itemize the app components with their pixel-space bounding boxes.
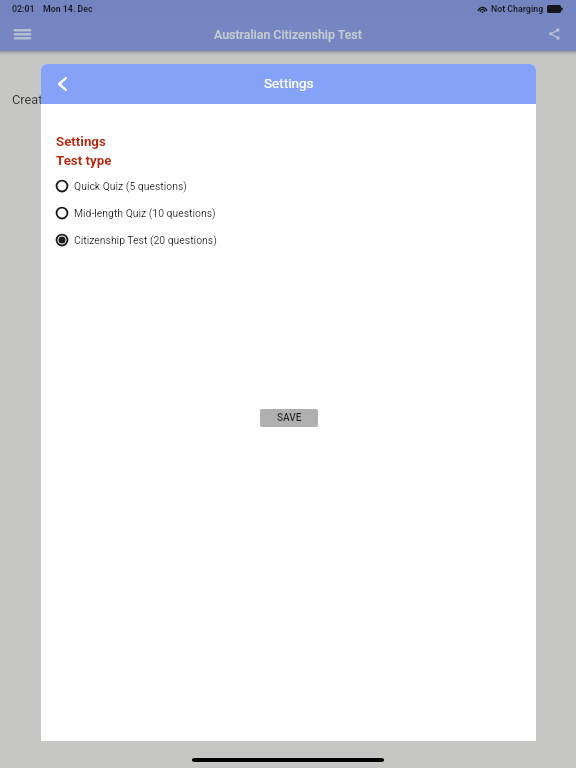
staticText: 02:01	[12, 4, 35, 14]
staticText: SAVE	[277, 412, 302, 424]
staticText: Test type	[56, 153, 112, 169]
button[interactable]: Citizenship Test (20 questions)	[41, 226, 536, 253]
staticText: Mon 14. Dec	[43, 4, 93, 14]
button[interactable]: SAVE	[260, 409, 318, 427]
staticText: Create	[12, 92, 50, 107]
button[interactable]: Share	[533, 17, 576, 51]
button[interactable]: Back	[41, 64, 83, 104]
button[interactable]: Menu	[0, 17, 44, 51]
staticText: Australian Citizenship Test	[214, 27, 362, 42]
staticText: Quick Quiz (5 questions)	[74, 180, 187, 192]
staticText: Not Charging	[491, 4, 544, 14]
staticText: Settings	[264, 75, 314, 91]
staticText: Mid-length Quiz (10 questions)	[74, 207, 216, 219]
button[interactable]: Quick Quiz (5 questions)	[41, 172, 536, 199]
button[interactable]: Mid-length Quiz (10 questions)	[41, 199, 536, 226]
staticText: Settings	[56, 134, 106, 150]
staticText: Citizenship Test (20 questions)	[74, 234, 217, 246]
